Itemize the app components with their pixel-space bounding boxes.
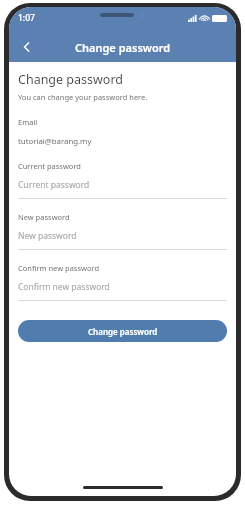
staticText: New password <box>18 230 77 242</box>
staticText: Current password <box>18 161 81 171</box>
staticText: New password <box>18 212 70 222</box>
staticText: Change password <box>88 326 158 337</box>
staticText: tutorial@barang.my <box>18 136 92 147</box>
button[interactable]: Change password <box>18 320 227 342</box>
staticText: Confirm new password <box>18 281 110 293</box>
staticText: Current password <box>18 179 90 191</box>
button[interactable]: Confirm new password <box>18 263 227 301</box>
staticText: Change password <box>18 71 124 88</box>
staticText: 1:07 <box>18 12 35 24</box>
staticText: Email <box>18 117 38 127</box>
staticText: Confirm new password <box>18 263 100 273</box>
button[interactable]: Current password <box>18 161 227 199</box>
button[interactable]: New password <box>18 212 227 250</box>
button[interactable]: Back <box>14 34 40 60</box>
staticText: Change password <box>75 40 171 55</box>
staticText: You can change your password here. <box>18 92 148 102</box>
